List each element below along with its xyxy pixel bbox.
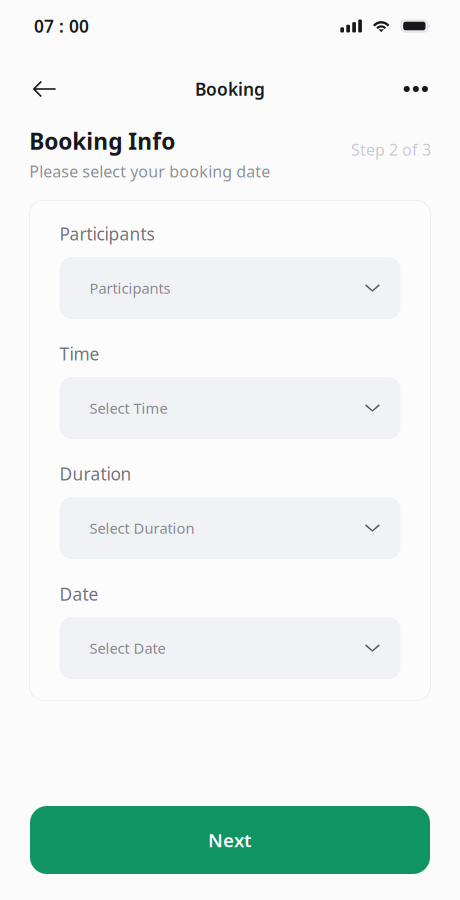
staticText: Select Date bbox=[89, 638, 165, 658]
staticText: Select Duration bbox=[89, 518, 194, 538]
staticText: Booking bbox=[195, 77, 265, 100]
button[interactable]: Select Time bbox=[59, 377, 400, 439]
staticText: Please select your booking date bbox=[29, 161, 270, 182]
staticText: Select Time bbox=[89, 398, 167, 418]
button[interactable]: Select Duration bbox=[59, 497, 400, 559]
staticText: Date bbox=[59, 582, 98, 605]
button[interactable]: More options bbox=[384, 67, 428, 111]
staticText: Duration bbox=[59, 462, 131, 485]
staticText: Booking Info bbox=[29, 126, 175, 156]
staticText: Participants bbox=[59, 222, 154, 245]
staticText: Participants bbox=[89, 278, 170, 298]
staticText: Time bbox=[59, 342, 99, 365]
button[interactable]: Back bbox=[33, 67, 77, 111]
staticText: 07 : 00 bbox=[34, 14, 89, 37]
button[interactable]: Select Date bbox=[59, 617, 400, 679]
button[interactable]: Next bbox=[30, 806, 430, 874]
button[interactable]: Participants bbox=[59, 257, 400, 319]
staticText: Step 2 of 3 bbox=[351, 139, 431, 160]
staticText: Next bbox=[208, 828, 252, 852]
